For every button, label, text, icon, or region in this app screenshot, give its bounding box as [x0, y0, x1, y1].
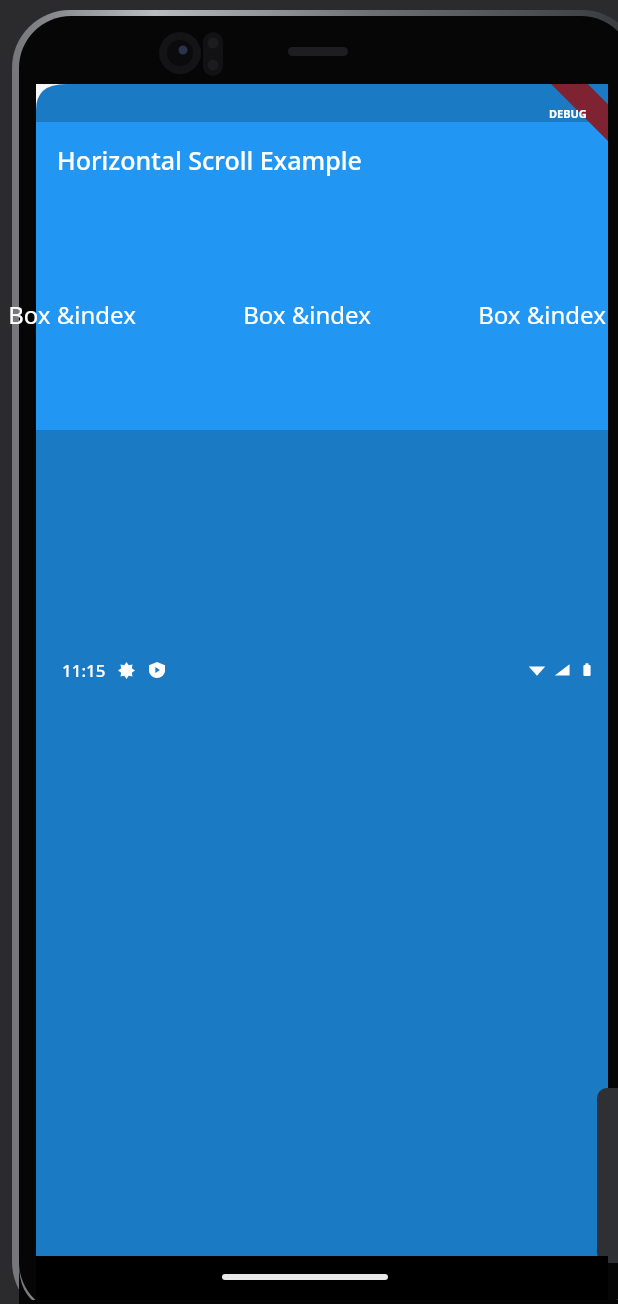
staticText: DEBUG [549, 106, 587, 121]
staticText: Box &index [8, 298, 136, 331]
staticText: 11:15 [62, 659, 106, 682]
button[interactable]: Box &index [424, 198, 618, 430]
button[interactable]: Zoom controls [597, 1088, 618, 1263]
staticText: Box &index [243, 298, 371, 331]
button[interactable]: Box &index [0, 198, 189, 430]
button[interactable]: Home gesture [222, 1274, 388, 1280]
staticText: Box &index [478, 298, 606, 331]
staticText: Horizontal Scroll Example [57, 143, 362, 177]
button[interactable]: Horizontal Scroll Example [36, 122, 608, 198]
button[interactable]: Box &index [189, 198, 424, 430]
